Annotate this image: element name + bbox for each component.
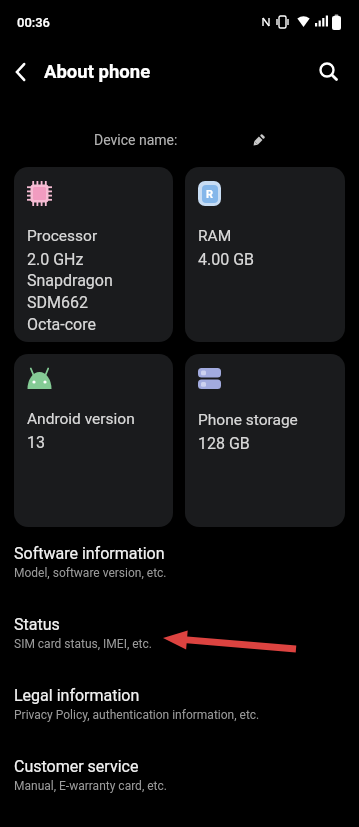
button[interactable]: R	[185, 167, 345, 342]
button[interactable]: Legal information	[0, 669, 359, 740]
staticText: Model, software version, etc.	[14, 566, 167, 580]
staticText: 13	[27, 433, 45, 452]
staticText: Android version	[27, 410, 135, 428]
button[interactable]: Phone storage	[185, 354, 345, 527]
staticText: Device name:	[94, 132, 178, 148]
staticText: Software information	[14, 544, 165, 563]
staticText: Legal information	[14, 686, 140, 705]
button[interactable]: Processor	[14, 167, 173, 342]
button[interactable]: Software information	[0, 527, 359, 598]
button[interactable]: Customer service	[0, 740, 359, 811]
staticText: 128 GB	[198, 434, 250, 453]
staticText: 00:36	[17, 15, 51, 30]
staticText: Status	[14, 615, 60, 634]
staticText: Phone storage	[198, 411, 298, 429]
staticText: SIM card status, IMEI, etc.	[14, 637, 152, 651]
staticText: Manual, E-warranty card, etc.	[14, 779, 167, 793]
staticText: 4.00 GB	[198, 250, 255, 269]
staticText: About phone	[44, 61, 151, 83]
button[interactable]	[305, 48, 353, 96]
staticText: Customer service	[14, 757, 139, 776]
button[interactable]: Status	[0, 598, 359, 669]
button[interactable]	[0, 50, 44, 94]
button[interactable]: Device name:	[0, 120, 359, 160]
staticText: R	[206, 188, 214, 201]
staticText: Privacy Policy, authentication informati…	[14, 708, 260, 722]
staticText: Processor	[27, 227, 98, 245]
staticText: RAM	[198, 227, 232, 245]
staticText: 2.0 GHz Snapdragon SDM662 Octa-core	[27, 250, 113, 334]
button[interactable]: Android version	[14, 354, 173, 527]
